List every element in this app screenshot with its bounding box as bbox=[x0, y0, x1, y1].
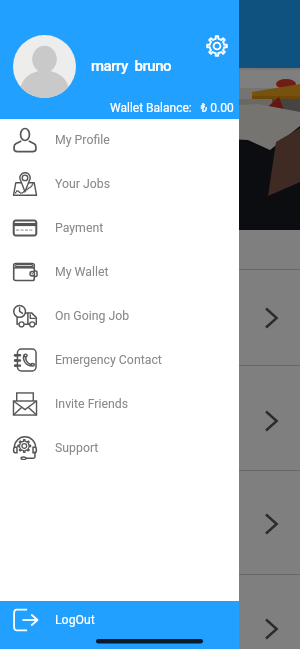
staticText: Payment bbox=[55, 221, 104, 235]
button[interactable]: My Profile bbox=[0, 118, 239, 162]
button[interactable]: Invite Friends bbox=[0, 382, 239, 426]
staticText: Wallet Balance: ₺ 0.00 bbox=[110, 101, 234, 115]
button[interactable]: Your Jobs bbox=[0, 162, 239, 206]
staticText: marry bruno bbox=[91, 57, 172, 75]
button[interactable]: LogOut bbox=[0, 601, 239, 649]
staticText: Invite Friends bbox=[55, 397, 129, 411]
button[interactable]: On Going Job bbox=[0, 294, 239, 338]
button[interactable]: Payment bbox=[0, 206, 239, 250]
staticText: My Profile bbox=[55, 133, 110, 147]
staticText: My Wallet bbox=[55, 265, 109, 279]
staticText: On Going Job bbox=[55, 309, 130, 323]
button[interactable]: My Wallet bbox=[0, 250, 239, 294]
button[interactable]: Support bbox=[0, 426, 239, 470]
button[interactable]: Emergency Contact bbox=[0, 338, 239, 382]
staticText: Support bbox=[55, 441, 99, 455]
staticText: LogOut bbox=[55, 613, 95, 627]
staticText: Emergency Contact bbox=[55, 353, 162, 367]
staticText: Your Jobs bbox=[55, 177, 111, 191]
button[interactable]: Profile photo bbox=[13, 35, 76, 98]
button[interactable]: Settings bbox=[206, 35, 228, 57]
